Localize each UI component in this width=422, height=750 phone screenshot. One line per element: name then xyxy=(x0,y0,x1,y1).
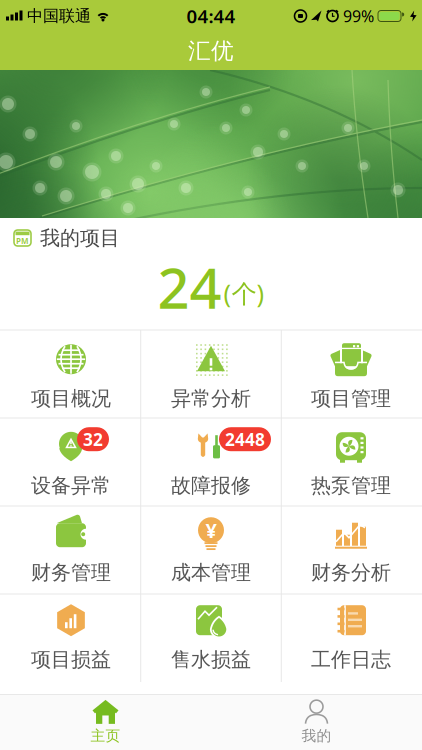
button[interactable]: 我的 xyxy=(211,695,422,750)
staticText: 异常分析 xyxy=(171,386,251,411)
staticText: 成本管理 xyxy=(171,560,251,585)
staticText: 项目管理 xyxy=(311,386,391,411)
button[interactable]: 异常分析 xyxy=(141,332,281,419)
staticText: 99% xyxy=(343,5,374,27)
staticText: 主页 xyxy=(90,727,120,745)
button[interactable]: 主页 xyxy=(0,695,211,750)
button[interactable]: 32 xyxy=(1,419,141,506)
staticText: ¥ xyxy=(205,517,216,543)
staticText: 24 xyxy=(157,250,221,324)
staticText: 项目概况 xyxy=(31,386,111,411)
staticText: (个) xyxy=(223,276,264,310)
staticText: PM xyxy=(16,236,29,246)
button[interactable]: 项目损益 xyxy=(1,593,141,680)
staticText: 32 xyxy=(83,428,103,451)
button[interactable]: 2448 xyxy=(141,419,281,506)
button[interactable]: 热泵管理 xyxy=(281,419,421,506)
staticText: 中国联通 xyxy=(27,6,91,26)
button[interactable]: 财务分析 xyxy=(281,506,421,593)
staticText: 故障报修 xyxy=(171,473,251,498)
staticText: 财务分析 xyxy=(311,560,391,585)
staticText: 我的 xyxy=(301,727,331,745)
staticText: 财务管理 xyxy=(31,560,111,585)
staticText: 售水损益 xyxy=(171,647,251,672)
button[interactable]: 工作日志 xyxy=(281,593,421,680)
staticText: 我的项目 xyxy=(40,226,120,250)
staticText: 04:44 xyxy=(186,4,235,28)
staticText: 项目损益 xyxy=(31,647,111,672)
button[interactable]: PM xyxy=(13,226,120,250)
staticText: 热泵管理 xyxy=(311,473,391,498)
button[interactable]: 财务管理 xyxy=(1,506,141,593)
button[interactable]: 售水损益 xyxy=(141,593,281,680)
staticText: 2448 xyxy=(225,428,265,451)
button[interactable]: ¥ xyxy=(141,506,281,593)
button[interactable]: 项目概况 xyxy=(1,332,141,419)
button[interactable]: 24 xyxy=(157,250,264,324)
staticText: 汇优 xyxy=(188,37,234,65)
button[interactable]: 项目管理 xyxy=(281,332,421,419)
staticText: 设备异常 xyxy=(31,473,111,498)
staticText: 工作日志 xyxy=(311,647,391,672)
